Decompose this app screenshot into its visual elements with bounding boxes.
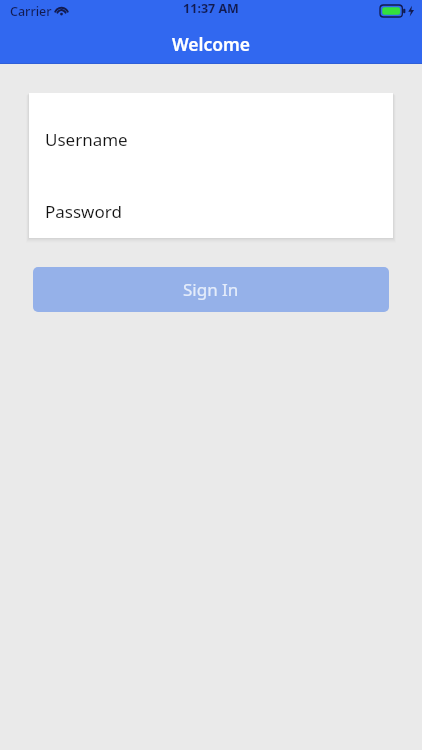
button[interactable]: Password <box>29 200 393 222</box>
other: Battery full, charging <box>380 5 406 17</box>
staticText: Carrier <box>10 3 52 20</box>
button[interactable]: Username <box>29 128 393 150</box>
other: Wi-Fi signal <box>54 5 69 17</box>
staticText: Password <box>45 200 122 222</box>
staticText: Sign In <box>183 278 239 301</box>
staticText: Username <box>45 128 128 150</box>
button[interactable]: Sign In <box>33 267 389 312</box>
staticText: Welcome <box>0 32 422 56</box>
staticText: 11:37 AM <box>0 0 422 17</box>
